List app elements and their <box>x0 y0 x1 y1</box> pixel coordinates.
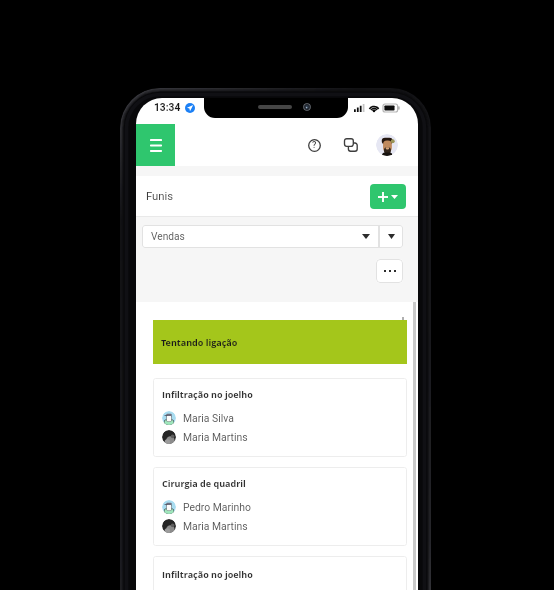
button[interactable]: Infiltração no joelho <box>153 378 407 457</box>
button[interactable]: More filters <box>379 225 403 248</box>
staticText: Cirurgia de quadril <box>162 477 246 489</box>
button[interactable]: More options <box>376 259 403 283</box>
button[interactable]: Cirurgia de quadril <box>153 467 407 546</box>
staticText: 13:34 <box>154 102 181 114</box>
button[interactable]: Tentando ligação <box>153 320 407 364</box>
staticText: ? <box>312 140 317 151</box>
staticText: Infiltração no joelho <box>162 388 253 400</box>
button[interactable]: Profile <box>376 134 398 156</box>
button[interactable]: Vendas <box>142 225 379 248</box>
staticText: Pedro Marinho <box>183 501 251 513</box>
button[interactable]: Help <box>303 134 325 156</box>
button[interactable]: Chat <box>340 134 362 156</box>
staticText: Maria Martins <box>183 520 248 532</box>
staticText: Funis <box>146 190 174 203</box>
button[interactable]: Add funnel <box>370 184 406 209</box>
staticText: Vendas <box>151 231 185 243</box>
staticText: Maria Silva <box>183 412 234 424</box>
staticText: Tentando ligação <box>161 336 238 348</box>
button[interactable]: Menu <box>136 124 175 166</box>
staticText: Infiltração no joelho <box>162 568 253 580</box>
button[interactable]: Infiltração no joelho <box>153 556 407 590</box>
staticText: Maria Martins <box>183 431 248 443</box>
